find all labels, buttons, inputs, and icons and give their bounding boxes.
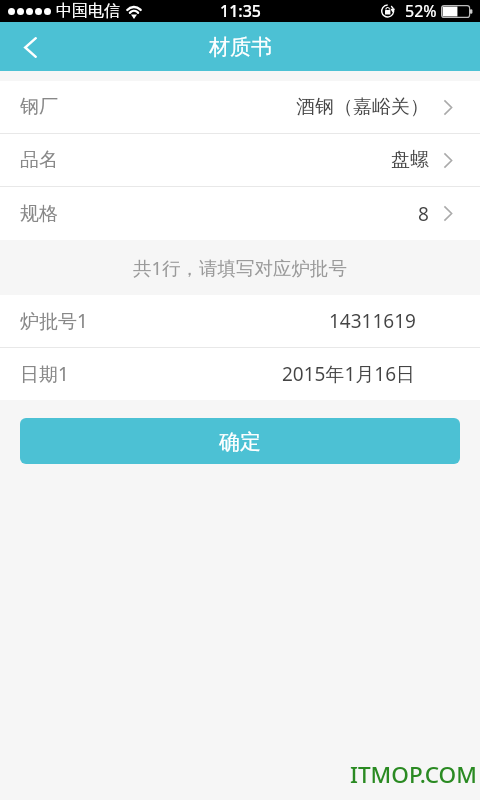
staticText: 钢厂 [20,95,58,119]
button[interactable]: 品名 [0,134,480,186]
button[interactable]: Back [0,22,60,71]
staticText: 14311619 [329,308,416,334]
staticText: 盘螺 [391,148,429,172]
staticText: 品名 [20,148,58,172]
button[interactable]: 炉批号1 [0,295,480,347]
staticText: ITMOP.COM [350,759,477,790]
staticText: 确定 [219,429,261,455]
staticText: 酒钢（嘉峪关） [296,95,429,119]
button[interactable]: 规格 [0,187,480,240]
staticText: 11:35 [220,0,261,22]
button[interactable]: 确定 [20,418,460,464]
staticText: 2015年1月16日 [282,361,416,387]
button[interactable]: 日期1 [0,348,480,400]
staticText: 8 [418,201,429,227]
staticText: 52% [405,0,437,22]
staticText: 共1行，请填写对应炉批号 [133,255,348,280]
staticText: 规格 [20,202,58,226]
staticText: 炉批号1 [20,308,88,334]
staticText: 材质书 [209,34,272,60]
staticText: 日期1 [20,361,69,387]
staticText: 中国电信 [56,1,120,21]
button[interactable]: 钢厂 [0,81,480,133]
